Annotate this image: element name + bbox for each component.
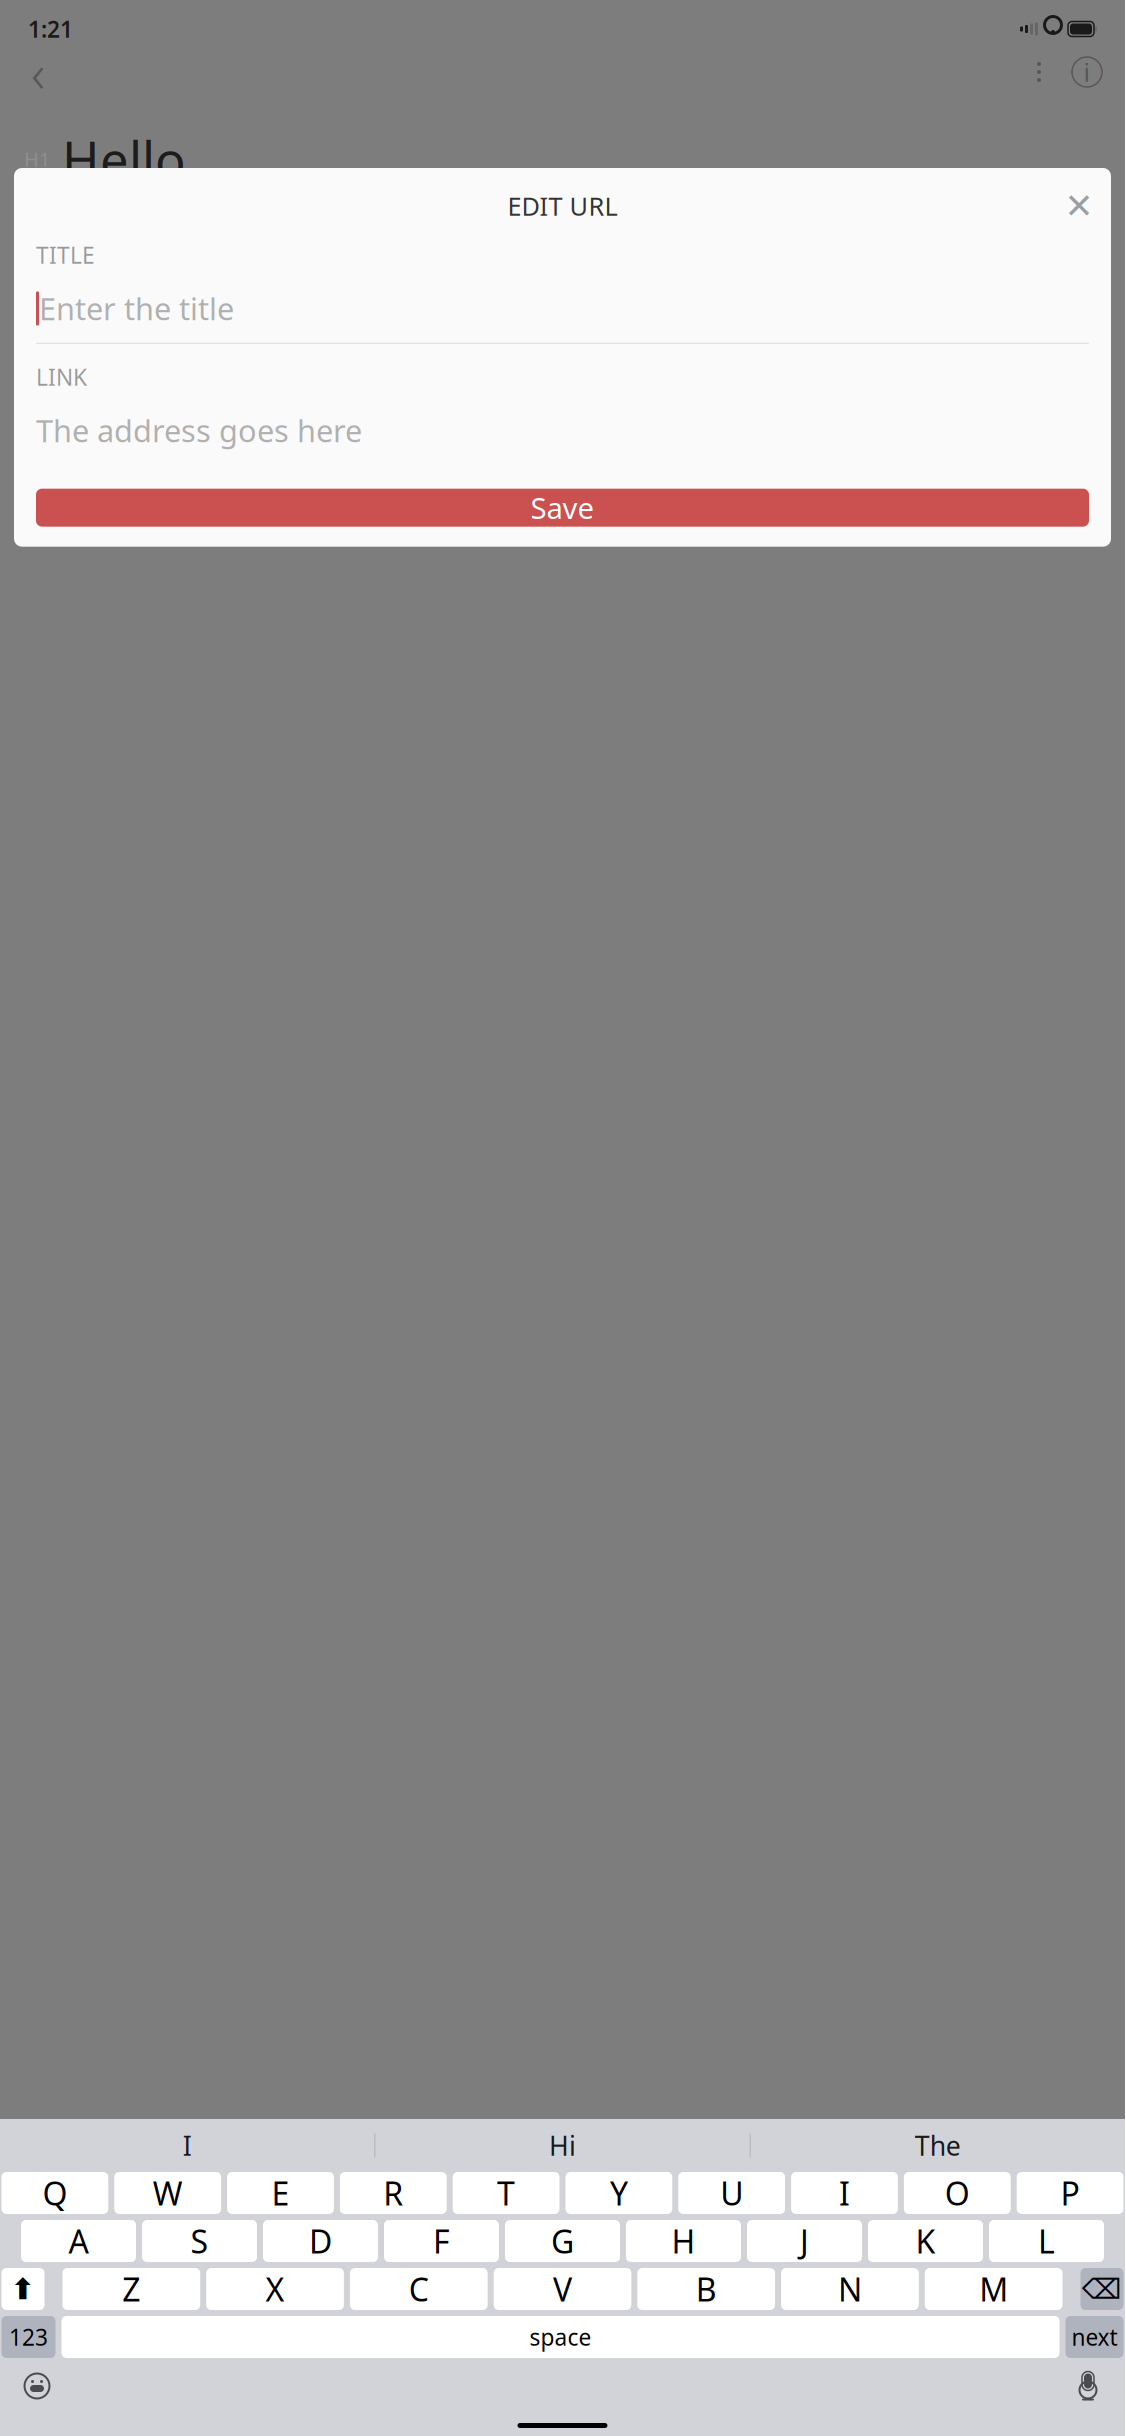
- staticText: The address goes here: [36, 410, 362, 451]
- button[interactable]: C: [350, 2268, 488, 2310]
- staticText: ⌫: [1082, 2273, 1122, 2305]
- button[interactable]: S: [142, 2220, 257, 2262]
- staticText: The: [915, 2128, 961, 2163]
- staticText: Hello: [62, 125, 186, 193]
- staticText: LINK: [36, 362, 87, 392]
- button[interactable]: P: [1017, 2172, 1123, 2214]
- button[interactable]: Close: [1055, 182, 1103, 230]
- button[interactable]: B: [637, 2268, 775, 2310]
- button[interactable]: W: [114, 2172, 221, 2214]
- button[interactable]: Save: [36, 489, 1089, 527]
- button[interactable]: Shift: [1, 2268, 44, 2310]
- button[interactable]: Q: [1, 2172, 108, 2214]
- staticText: U: [720, 2172, 743, 2214]
- button[interactable]: R: [340, 2172, 447, 2214]
- button[interactable]: K: [868, 2220, 983, 2262]
- button[interactable]: L: [989, 2220, 1104, 2262]
- staticText: C: [409, 2268, 429, 2310]
- staticText: K: [915, 2220, 935, 2262]
- staticText: M: [979, 2268, 1008, 2310]
- button[interactable]: D: [263, 2220, 378, 2262]
- button[interactable]: J: [747, 2220, 862, 2262]
- staticText: A: [68, 2220, 88, 2262]
- staticText: I: [183, 2128, 192, 2163]
- button[interactable]: Info: [1061, 46, 1113, 98]
- staticText: D: [309, 2220, 332, 2262]
- staticText: F: [433, 2220, 450, 2262]
- button[interactable]: Emoji: [12, 2364, 62, 2408]
- staticText: 1:21: [28, 14, 73, 44]
- button[interactable]: Back: [12, 46, 64, 98]
- staticText: S: [190, 2220, 208, 2262]
- staticText: X: [266, 2268, 285, 2310]
- staticText: T: [497, 2172, 515, 2214]
- button[interactable]: G: [505, 2220, 620, 2262]
- button[interactable]: Y: [565, 2172, 672, 2214]
- staticText: I: [839, 2172, 850, 2214]
- staticText: L: [1038, 2220, 1055, 2262]
- staticText: Hi: [549, 2128, 576, 2163]
- staticText: Save: [530, 488, 594, 527]
- button[interactable]: A: [21, 2220, 136, 2262]
- staticText: space: [529, 2322, 591, 2352]
- button[interactable]: space: [61, 2316, 1059, 2358]
- button[interactable]: 123: [1, 2316, 55, 2358]
- button[interactable]: M: [925, 2268, 1062, 2310]
- staticText: Enter the title: [39, 288, 234, 329]
- staticText: J: [800, 2220, 809, 2262]
- staticText: E: [271, 2172, 289, 2214]
- button[interactable]: X: [206, 2268, 344, 2310]
- staticText: H: [671, 2220, 695, 2262]
- staticText: G: [551, 2220, 574, 2262]
- staticText: R: [383, 2172, 403, 2214]
- button[interactable]: Z: [62, 2268, 200, 2310]
- staticText: H1: [24, 146, 50, 172]
- button[interactable]: F: [384, 2220, 499, 2262]
- staticText: Q: [42, 2172, 67, 2214]
- button[interactable]: T: [453, 2172, 559, 2214]
- staticText: V: [553, 2268, 572, 2310]
- button[interactable]: Delete: [1080, 2268, 1123, 2310]
- button[interactable]: Hi: [375, 2119, 750, 2172]
- staticText: B: [696, 2268, 717, 2310]
- button[interactable]: next: [1065, 2316, 1123, 2358]
- button[interactable]: Dictation: [1063, 2364, 1113, 2408]
- button[interactable]: The: [751, 2119, 1125, 2172]
- staticText: ‹: [31, 37, 45, 107]
- button[interactable]: I: [0, 2119, 374, 2172]
- staticText: 123: [9, 2322, 48, 2352]
- staticText: TITLE: [36, 240, 95, 270]
- button[interactable]: E: [227, 2172, 334, 2214]
- staticText: EDIT URL: [507, 189, 617, 223]
- button[interactable]: U: [678, 2172, 785, 2214]
- button[interactable]: O: [904, 2172, 1011, 2214]
- staticText: Z: [122, 2268, 140, 2310]
- staticText: Y: [610, 2172, 628, 2214]
- staticText: N: [838, 2268, 862, 2310]
- staticText: i: [1083, 55, 1090, 89]
- staticText: ⬆: [10, 2272, 35, 2306]
- staticText: next: [1071, 2322, 1117, 2352]
- button[interactable]: More options: [1017, 46, 1061, 98]
- staticText: W: [153, 2172, 183, 2214]
- button[interactable]: V: [494, 2268, 631, 2310]
- staticText: O: [945, 2172, 970, 2214]
- staticText: ✕: [1064, 186, 1093, 226]
- button[interactable]: I: [791, 2172, 898, 2214]
- staticText: P: [1061, 2172, 1080, 2214]
- button[interactable]: H: [626, 2220, 741, 2262]
- button[interactable]: N: [781, 2268, 919, 2310]
